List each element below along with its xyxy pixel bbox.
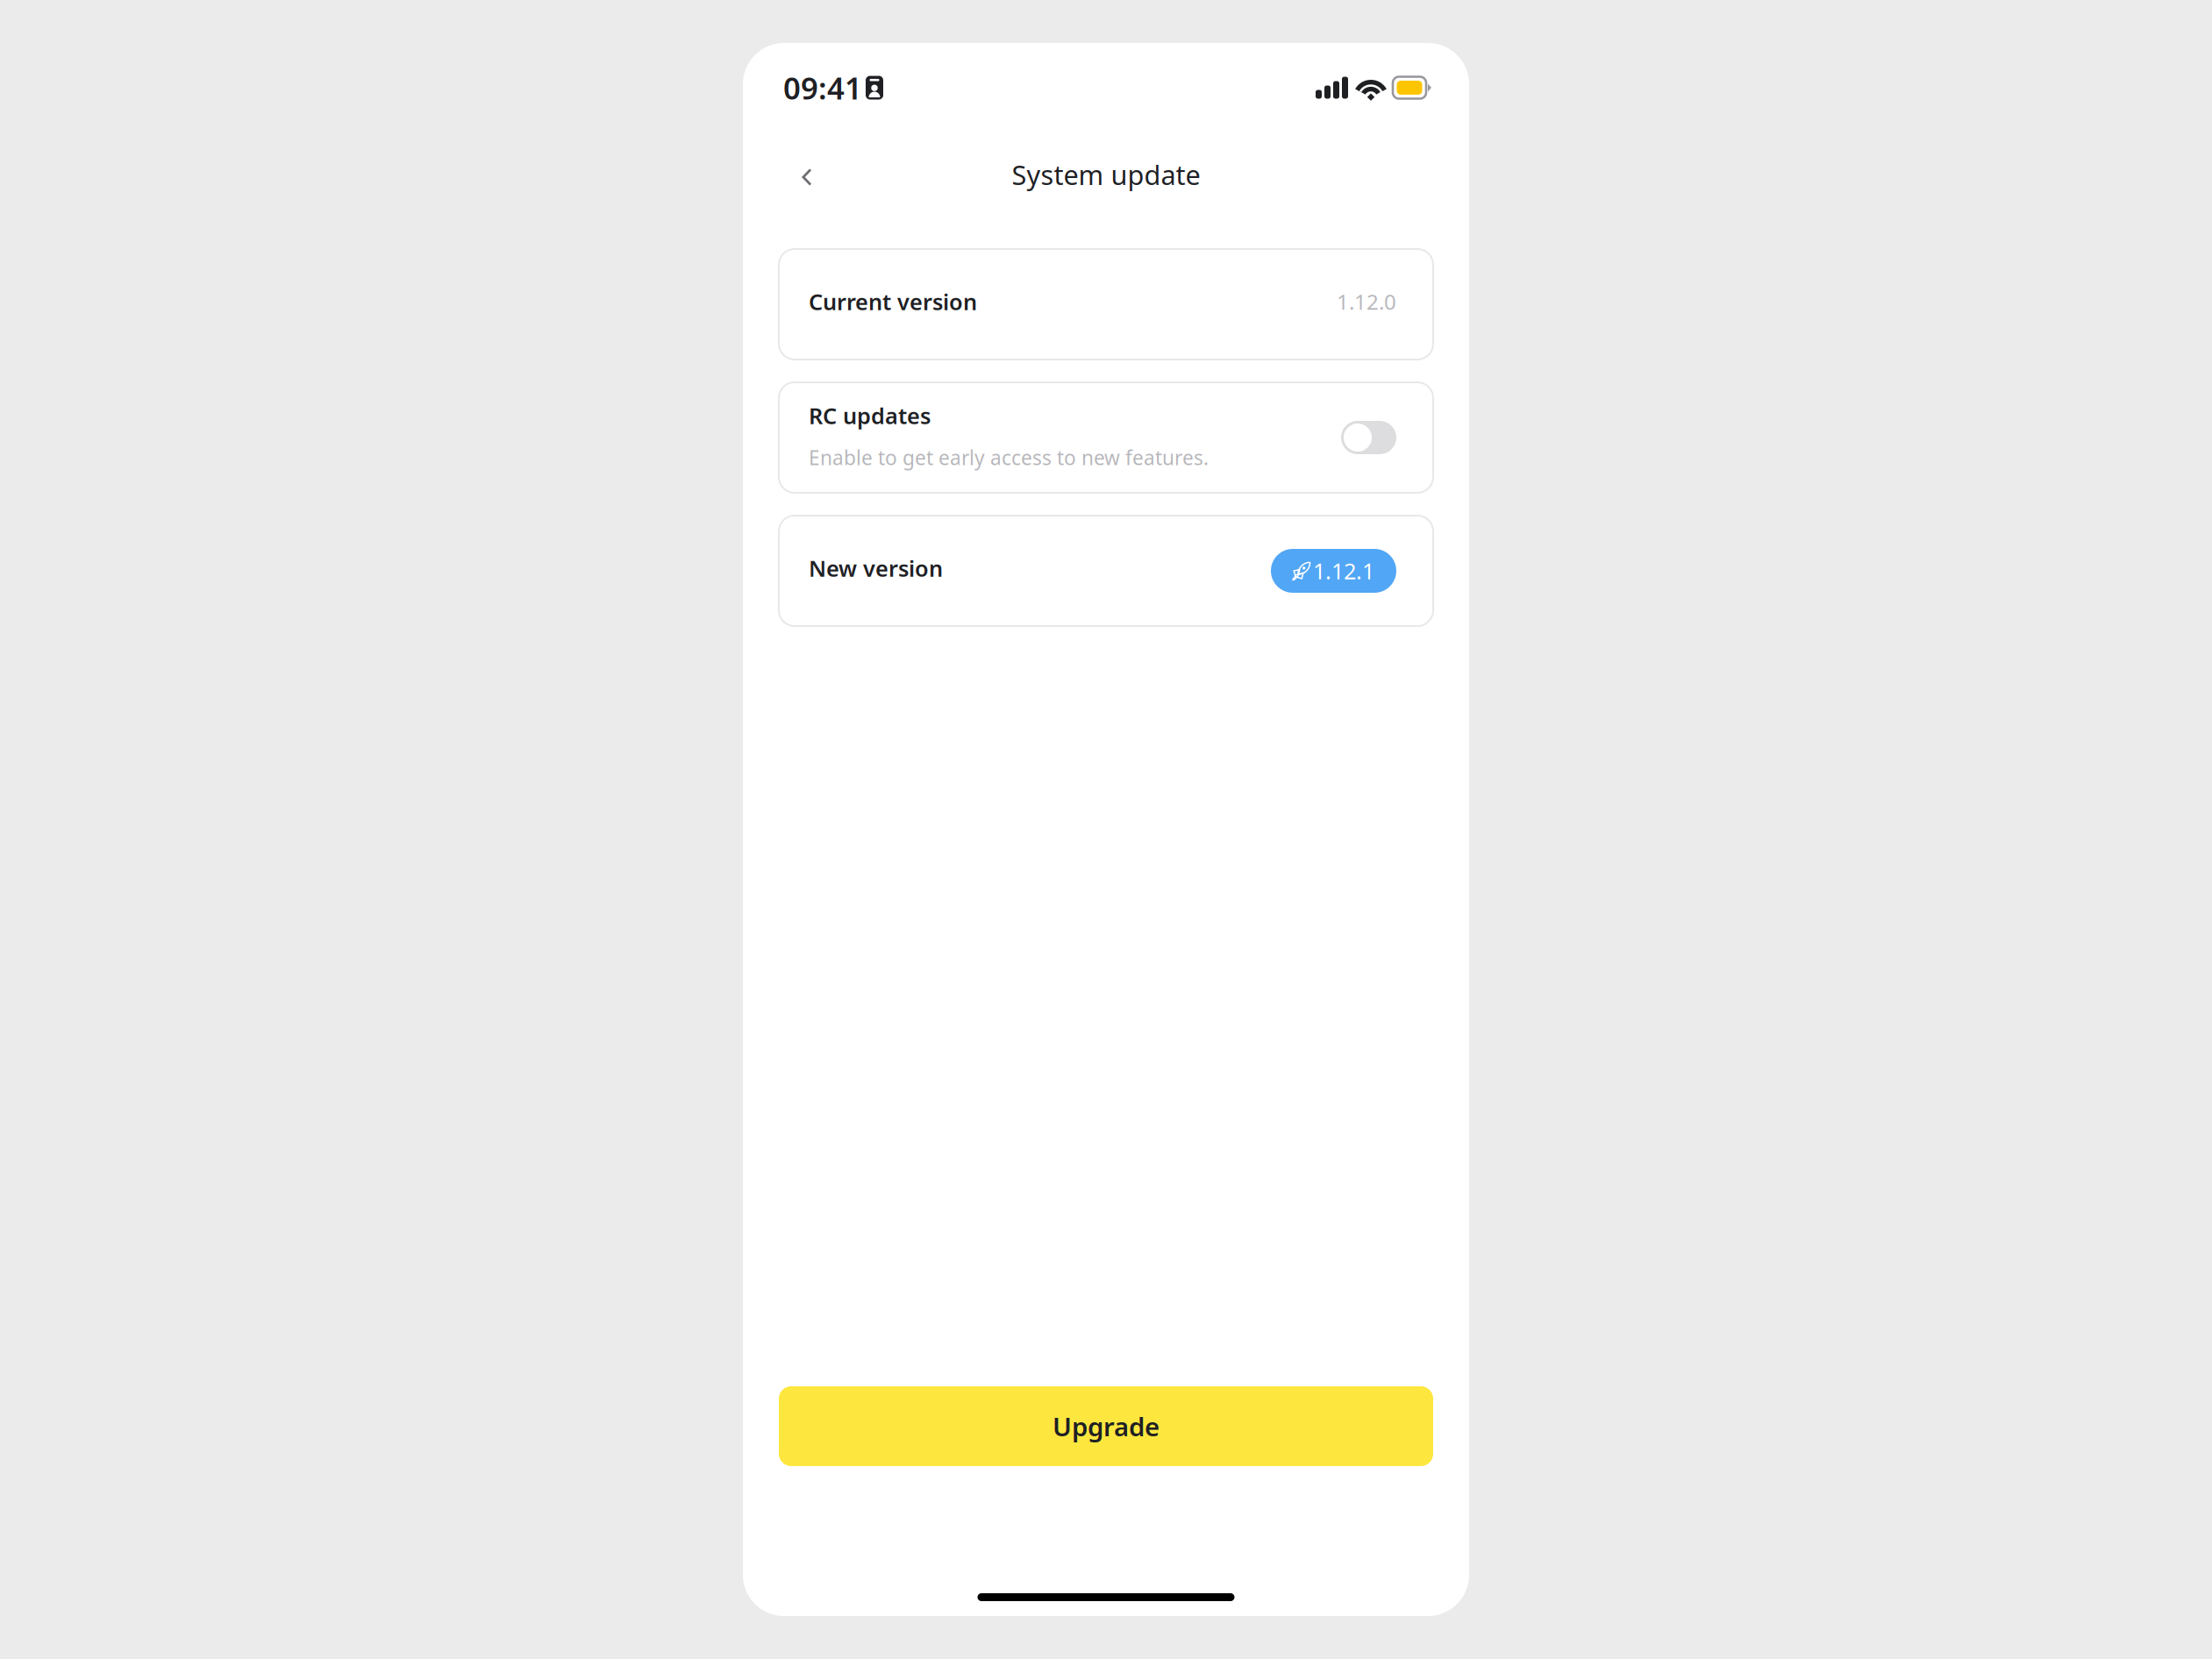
- button[interactable]: Back: [786, 153, 828, 196]
- staticText: Upgrade: [1052, 1409, 1160, 1443]
- staticText: 1.12.0: [1337, 288, 1396, 316]
- button[interactable]: Current version: [743, 249, 1469, 360]
- staticText: Enable to get early access to new featur…: [809, 444, 1209, 471]
- staticText: RC updates: [809, 401, 931, 430]
- staticText: 09:41: [783, 68, 862, 108]
- staticText: 1.12.1: [1313, 556, 1374, 586]
- button[interactable]: RC updates: [1341, 421, 1396, 454]
- button[interactable]: Install version 1.12.1: [1271, 549, 1396, 593]
- staticText: New version: [809, 553, 943, 583]
- button[interactable]: Upgrade: [779, 1386, 1433, 1466]
- staticText: Current version: [809, 287, 977, 316]
- staticText: System update: [1012, 157, 1200, 192]
